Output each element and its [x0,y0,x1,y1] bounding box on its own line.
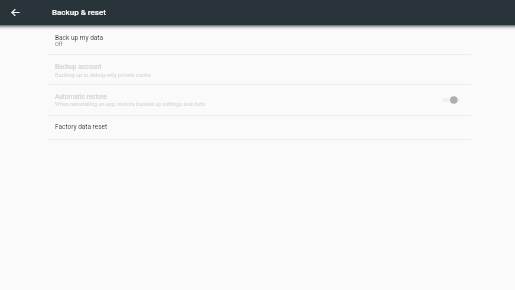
staticText: Off [55,41,63,47]
staticText: Factory data reset [55,123,108,131]
button[interactable]: Automatic restore [0,85,515,116]
staticText: Backing up to debug-only private cache [55,72,151,78]
staticText: Backup & reset [52,8,106,17]
button[interactable]: Backup account [0,55,515,85]
staticText: Back up my data [55,34,103,42]
staticText: Automatic restore [55,93,107,101]
staticText: Backup account [55,63,102,71]
button[interactable]: Factory data reset [0,116,515,140]
button[interactable]: Navigate up [2,2,23,23]
button[interactable]: Back up my data [0,25,515,55]
staticText: When reinstalling an app, restore backed… [55,101,205,107]
button[interactable]: Automatic restore, off [440,93,462,107]
